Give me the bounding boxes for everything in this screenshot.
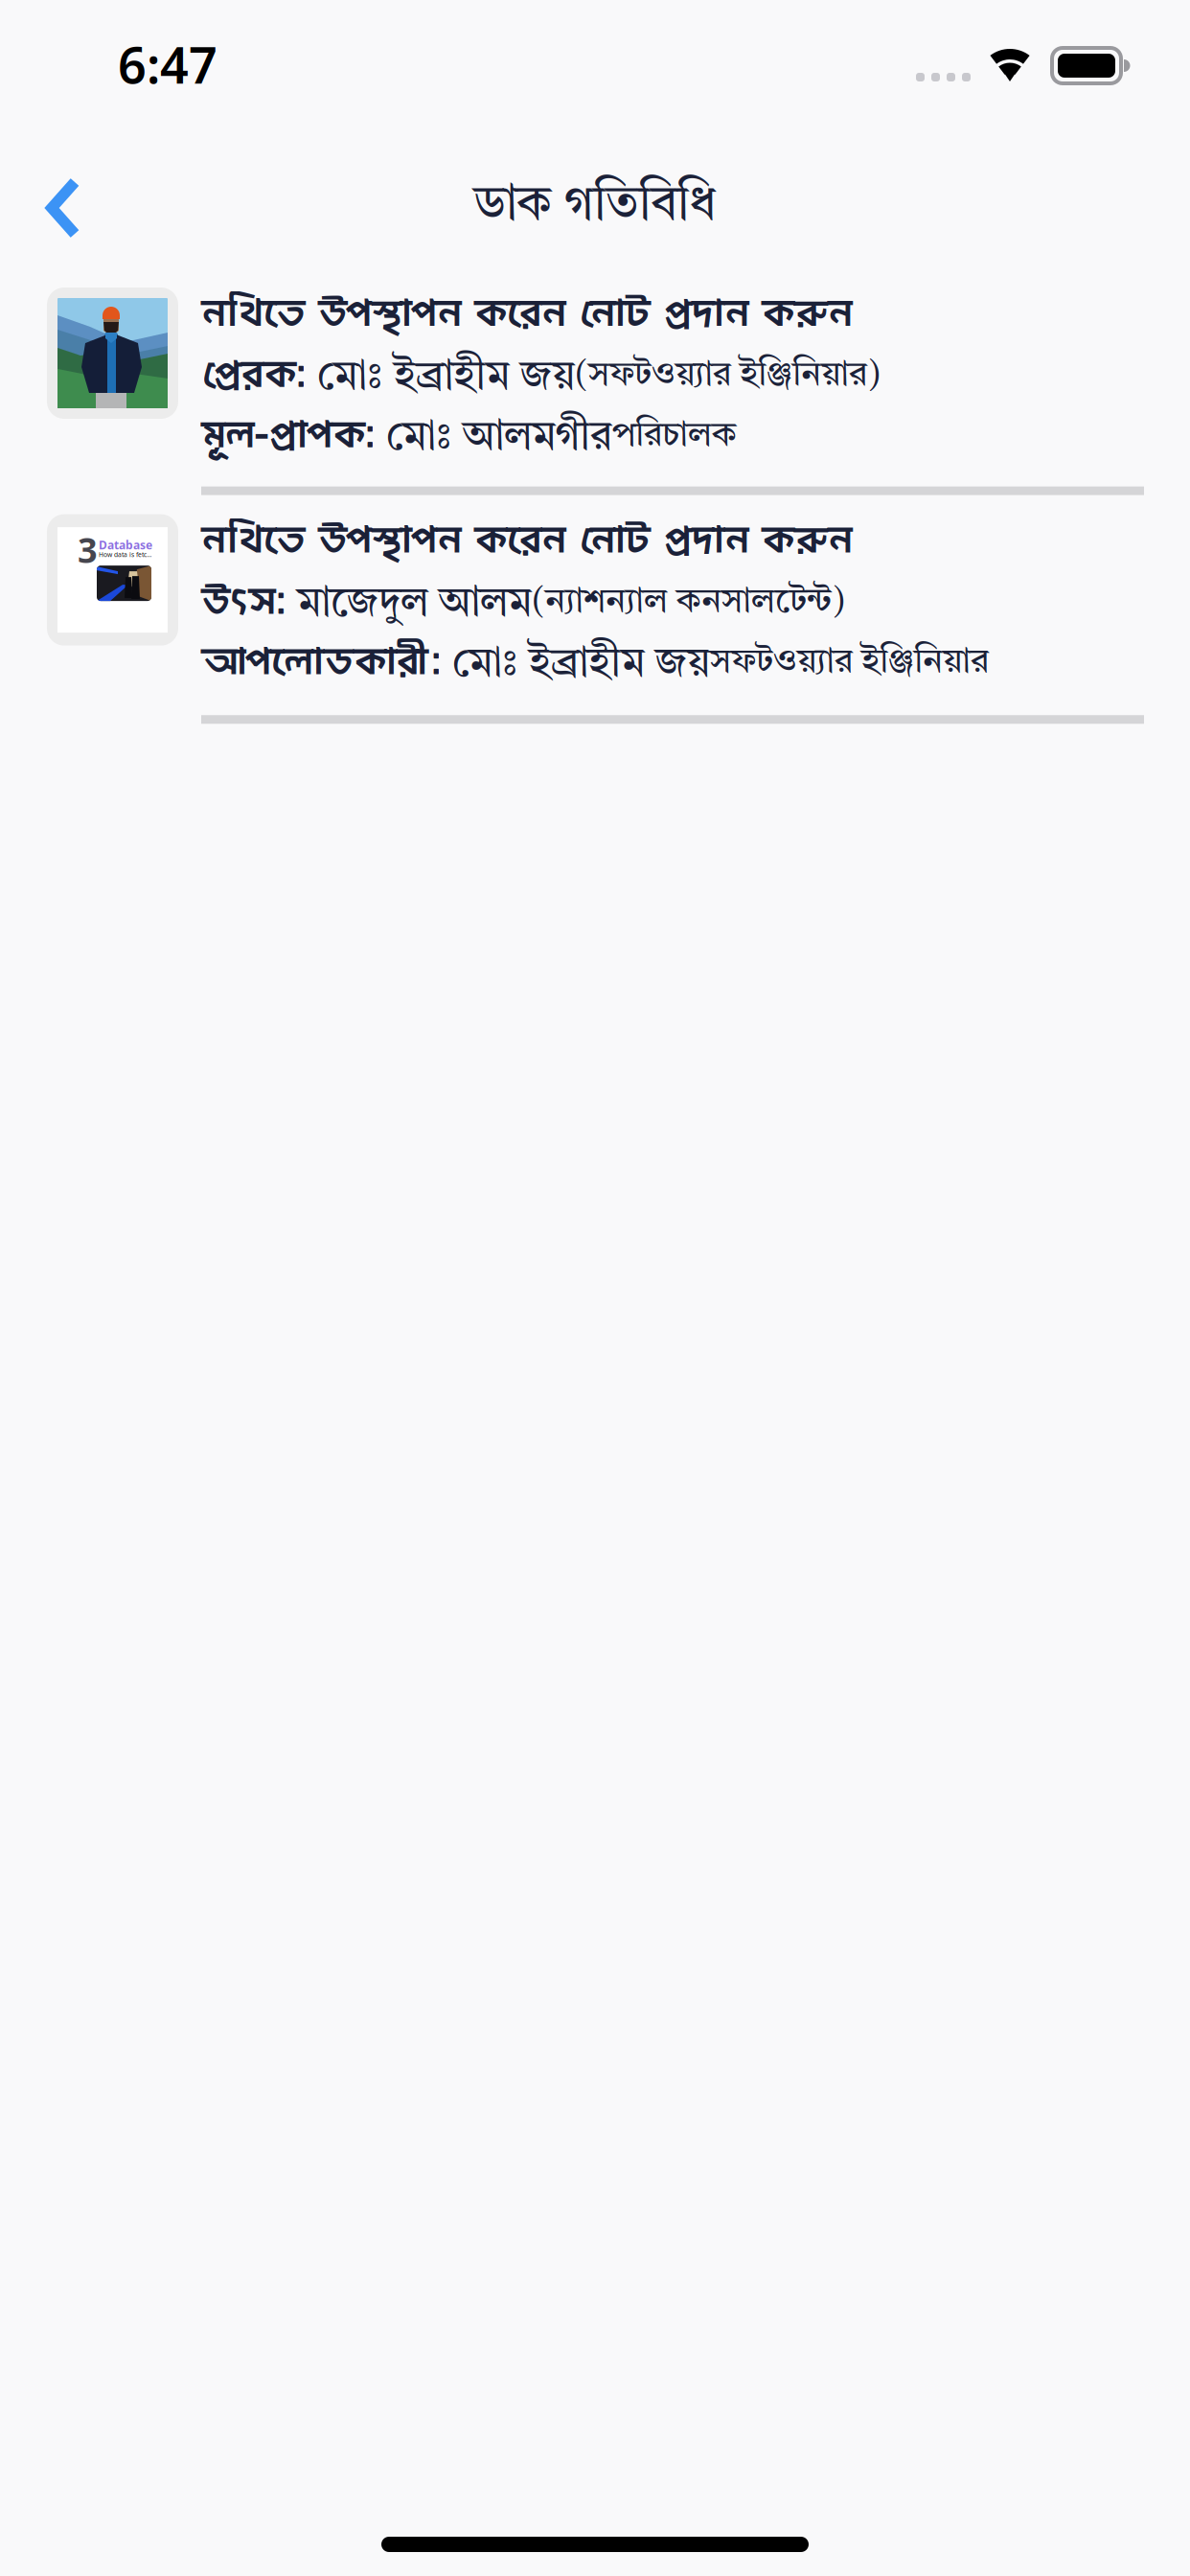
button[interactable]: Back bbox=[0, 148, 117, 255]
staticText: উৎস: মাজেদুল আলম(ন্যাশন্যাল কনসালটেন্ট) bbox=[201, 573, 845, 633]
staticText: 6:47 bbox=[118, 31, 217, 97]
staticText: Database bbox=[99, 537, 152, 553]
button[interactable]: নথিতে উপস্থাপন করেন নোট প্রদান করুন bbox=[0, 276, 1190, 486]
staticText: নথিতে উপস্থাপন করেন নোট প্রদান করুন bbox=[201, 285, 853, 346]
staticText: ডাক গতিবিধি bbox=[474, 182, 716, 231]
staticText: মূল-প্রাপক: মোঃ আলমগীরপরিচালক bbox=[201, 407, 737, 466]
staticText: নথিতে উপস্থাপন করেন নোট প্রদান করুন bbox=[201, 511, 853, 572]
staticText: আপলোডকারী: মোঃ ইব্রাহীম জয়সফটওয়্যার ইঞ… bbox=[201, 634, 989, 693]
button[interactable]: 3 bbox=[0, 495, 1190, 715]
staticText: How data is fetched bbox=[99, 550, 154, 559]
staticText: প্রেরক: মোঃ ইব্রাহীম জয়(সফটওয়্যার ইঞ্জ… bbox=[201, 347, 881, 406]
staticText: 3 bbox=[78, 527, 107, 573]
